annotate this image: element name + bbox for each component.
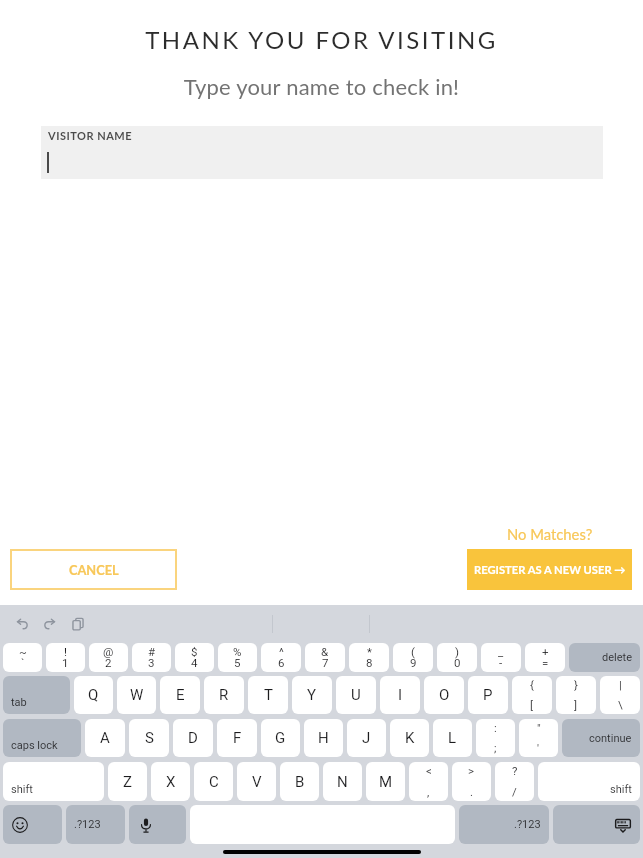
button[interactable]: L [433, 719, 472, 757]
button[interactable]: Emoji [3, 805, 62, 844]
button[interactable]: ~ [3, 643, 42, 672]
staticText: ! [64, 645, 67, 658]
button[interactable]: M [366, 762, 405, 801]
button[interactable]: N [323, 762, 362, 801]
button[interactable]: > [452, 762, 491, 801]
staticText: W [130, 686, 144, 704]
staticText: A [100, 729, 110, 747]
button[interactable]: CANCEL [10, 549, 177, 590]
staticText: * [367, 645, 372, 658]
staticText: .?123 [514, 818, 541, 831]
staticText: D [188, 729, 198, 747]
button[interactable]: .?123 [459, 805, 549, 844]
button[interactable]: J [347, 719, 386, 757]
staticText: ' [537, 741, 540, 754]
button[interactable]: ? [495, 762, 534, 801]
button[interactable]: * [349, 643, 389, 672]
button[interactable]: continue [562, 719, 640, 757]
staticText: T [264, 686, 273, 704]
button[interactable]: D [173, 719, 213, 757]
button[interactable]: E [160, 676, 200, 714]
staticText: 4 [191, 656, 198, 669]
button[interactable]: Voice input [129, 805, 186, 844]
staticText: V [252, 773, 262, 791]
button[interactable]: F [217, 719, 257, 757]
button[interactable]: caps lock [3, 719, 81, 757]
staticText: $ [191, 645, 198, 658]
button[interactable]: S [129, 719, 169, 757]
staticText: 2 [105, 656, 112, 669]
button[interactable]: ! [46, 643, 85, 672]
button[interactable]: % [218, 643, 257, 672]
button[interactable]: VISITOR NAME [41, 126, 603, 179]
button[interactable]: R [204, 676, 244, 714]
button[interactable]: REGISTER AS A NEW USER → [467, 549, 632, 590]
button[interactable]: + [525, 643, 565, 672]
staticText: < [426, 764, 432, 777]
staticText: N [337, 773, 348, 791]
button[interactable]: ^ [261, 643, 301, 672]
button[interactable]: { [512, 676, 552, 714]
button[interactable]: $ [175, 643, 214, 672]
button[interactable]: shift [3, 762, 104, 801]
button[interactable]: T [248, 676, 288, 714]
staticText: Type your name to check in! [0, 73, 643, 99]
button[interactable]: & [305, 643, 345, 672]
staticText: : [494, 721, 497, 734]
button[interactable]: H [304, 719, 343, 757]
button[interactable]: } [556, 676, 596, 714]
staticText: delete [602, 651, 632, 664]
button[interactable]: .?123 [66, 805, 125, 844]
staticText: ^ [279, 645, 284, 658]
button[interactable]: O [424, 676, 464, 714]
staticText: . [470, 785, 474, 798]
staticText: F [233, 729, 242, 747]
button[interactable]: " [519, 719, 558, 757]
staticText: H [318, 729, 329, 747]
button[interactable]: Hide keyboard [553, 805, 640, 844]
button[interactable]: Y [292, 676, 332, 714]
button[interactable]: Undo [8, 607, 36, 641]
button[interactable]: P [468, 676, 508, 714]
button[interactable]: | [600, 676, 640, 714]
button[interactable]: V [237, 762, 276, 801]
button[interactable]: X [151, 762, 190, 801]
button[interactable]: : [476, 719, 515, 757]
staticText: S [145, 729, 154, 747]
button[interactable]: Z [108, 762, 147, 801]
staticText: \ [618, 698, 623, 711]
button[interactable]: K [390, 719, 429, 757]
staticText: @ [103, 645, 114, 658]
button[interactable]: delete [569, 643, 640, 672]
staticText: tab [11, 696, 27, 709]
button[interactable]: C [194, 762, 233, 801]
staticText: ? [512, 764, 518, 777]
staticText: # [148, 645, 156, 658]
staticText: 7 [322, 656, 329, 669]
button[interactable]: _ [481, 643, 521, 672]
staticText: G [275, 729, 286, 747]
button[interactable]: B [280, 762, 319, 801]
button[interactable]: A [85, 719, 125, 757]
button[interactable]: shift [538, 762, 640, 801]
button[interactable]: ( [393, 643, 433, 672]
staticText: { [530, 678, 534, 691]
button[interactable]: I [380, 676, 420, 714]
button[interactable]: ) [437, 643, 477, 672]
staticText: O [439, 686, 450, 704]
staticText: ] [574, 698, 578, 711]
staticText: ( [411, 645, 415, 658]
button[interactable]: # [132, 643, 171, 672]
staticText: 3 [148, 656, 155, 669]
button[interactable]: @ [89, 643, 128, 672]
staticText: 1 [62, 656, 69, 669]
button[interactable]: Paste [64, 607, 92, 641]
button[interactable]: G [261, 719, 300, 757]
button[interactable]: U [336, 676, 376, 714]
button[interactable]: tab [3, 676, 70, 714]
button[interactable]: Q [74, 676, 113, 714]
button[interactable]: < [409, 762, 448, 801]
button[interactable]: W [117, 676, 156, 714]
button[interactable]: Redo [36, 607, 64, 641]
